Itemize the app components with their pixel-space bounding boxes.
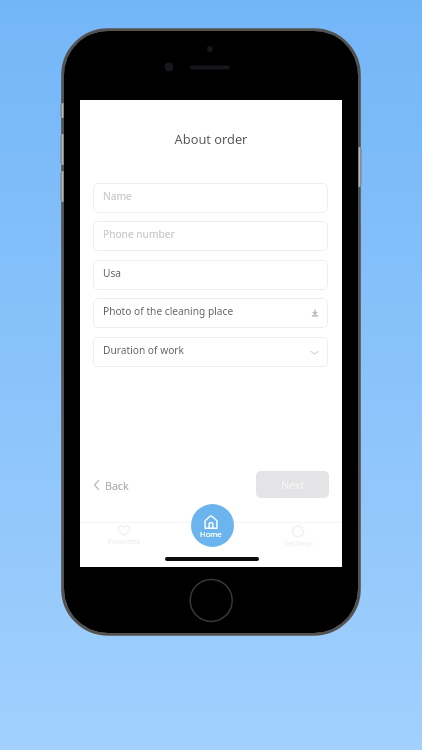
- button[interactable]: Phone number: [93, 221, 328, 251]
- button[interactable]: Settings: [275, 522, 321, 546]
- staticText: Home: [200, 529, 222, 539]
- button[interactable]: Duration of work: [93, 337, 328, 367]
- button[interactable]: Back: [91, 472, 137, 498]
- staticText: Next: [281, 478, 305, 492]
- other: Upload photo: [311, 309, 319, 317]
- staticText: Settings: [284, 538, 313, 548]
- staticText: Photo of the cleaning place: [103, 304, 234, 318]
- button[interactable]: Usa: [93, 260, 328, 290]
- other: Expand: [310, 348, 319, 357]
- button[interactable]: Next: [256, 471, 329, 498]
- button[interactable]: Home: [191, 504, 234, 547]
- staticText: Duration of work: [103, 343, 184, 357]
- staticText: Favorites: [108, 536, 141, 546]
- staticText: About order: [80, 130, 342, 147]
- button[interactable]: Favorites: [101, 522, 147, 546]
- staticText: Phone number: [103, 227, 175, 241]
- button[interactable]: Photo of the cleaning place: [93, 298, 328, 328]
- staticText: Usa: [103, 266, 122, 280]
- staticText: Back: [105, 479, 129, 493]
- button[interactable]: Name: [93, 183, 328, 213]
- staticText: Name: [103, 189, 132, 203]
